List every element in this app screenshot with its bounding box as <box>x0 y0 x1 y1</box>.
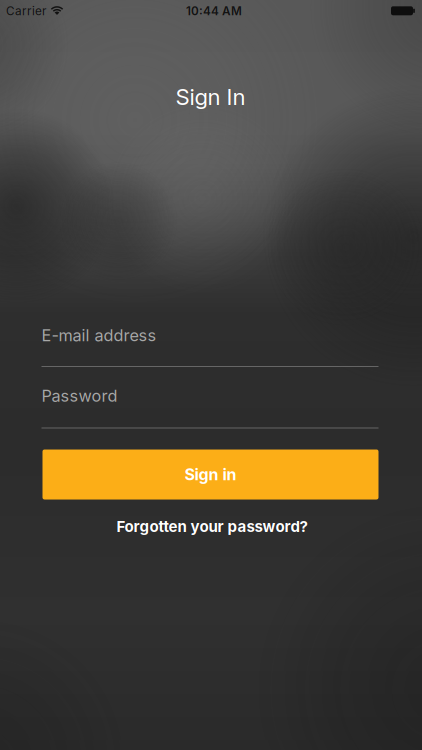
staticText: Forgotten your password? <box>116 517 307 536</box>
button[interactable]: Forgotten your password? <box>116 517 307 536</box>
button[interactable]: E-mail address <box>41 326 378 367</box>
button[interactable]: Password <box>41 386 378 428</box>
button[interactable]: Sign in <box>42 449 378 499</box>
staticText: Sign In <box>175 83 245 110</box>
staticText: Password <box>41 386 117 406</box>
staticText: 10:44 AM <box>186 4 242 18</box>
staticText: Carrier <box>6 4 46 18</box>
staticText: E-mail address <box>41 326 156 345</box>
staticText: Sign in <box>184 465 236 484</box>
